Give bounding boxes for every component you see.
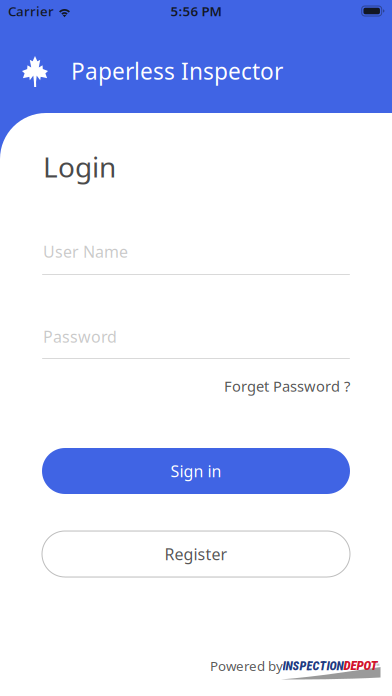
staticText: Register bbox=[164, 543, 227, 565]
staticText: 5:56 PM bbox=[170, 2, 221, 20]
staticText: Login bbox=[43, 148, 116, 185]
staticText: Paperless Inspector bbox=[71, 56, 283, 86]
staticText: Password bbox=[43, 326, 117, 347]
staticText: Forget Password ? bbox=[224, 376, 350, 396]
button[interactable]: Sign in bbox=[42, 448, 350, 494]
staticText: Carrier bbox=[8, 2, 54, 20]
staticText: User Name bbox=[43, 241, 128, 262]
staticText: Powered by bbox=[210, 657, 283, 675]
staticText: Sign in bbox=[170, 460, 221, 482]
button[interactable]: Register bbox=[42, 531, 350, 577]
staticText: DEPOT bbox=[343, 658, 377, 673]
staticText: INSPECTION bbox=[282, 659, 343, 673]
staticText: ™ bbox=[374, 661, 379, 670]
button[interactable]: Forget Password ? bbox=[42, 375, 350, 397]
